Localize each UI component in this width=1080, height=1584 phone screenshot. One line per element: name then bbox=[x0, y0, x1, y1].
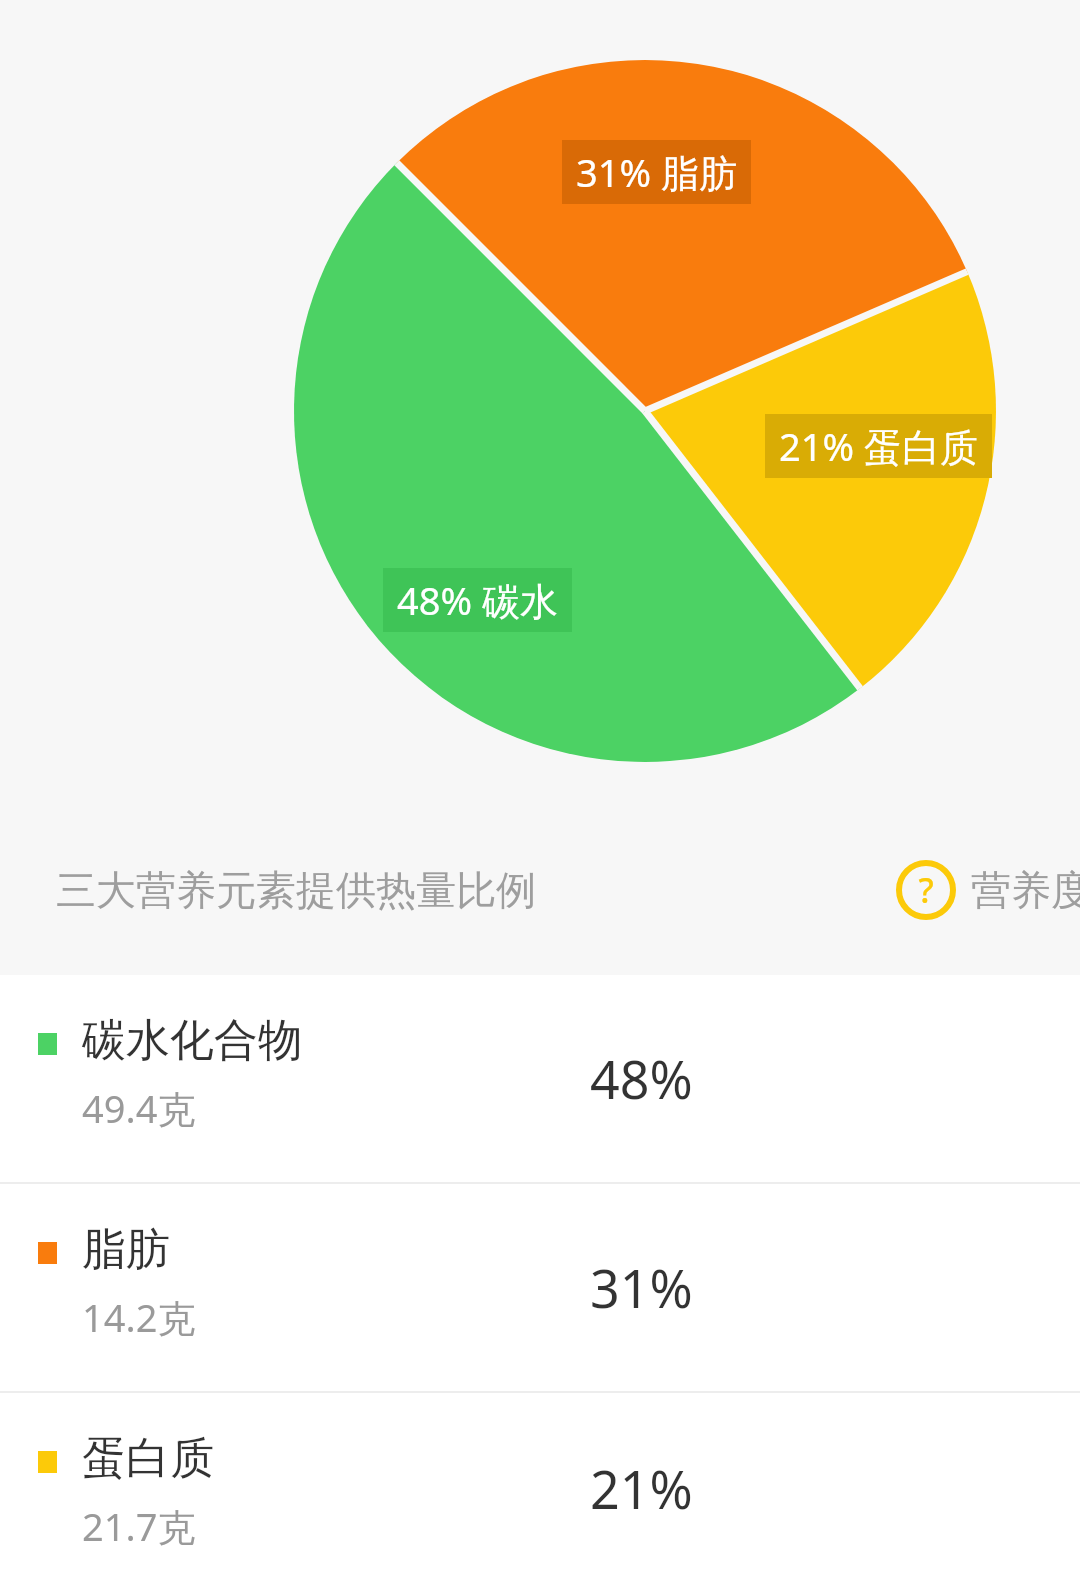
button[interactable]: 营养degree help bbox=[895, 859, 1080, 921]
staticText: 碳水化合物 bbox=[82, 1013, 302, 1068]
staticText: 21.7克 bbox=[82, 1500, 196, 1552]
staticText: 蛋白质 bbox=[82, 1431, 214, 1486]
staticText: 21% bbox=[590, 1453, 693, 1524]
staticText: 48% bbox=[590, 1043, 693, 1114]
staticText: 49.4克 bbox=[82, 1082, 196, 1134]
button[interactable]: 脂肪 bbox=[0, 1184, 1080, 1391]
staticText: 31% bbox=[590, 1252, 693, 1323]
button[interactable]: 蛋白质 bbox=[0, 1393, 1080, 1584]
staticText: 21% 蛋白质 bbox=[779, 420, 978, 472]
button[interactable]: 碳水化合物 bbox=[0, 975, 1080, 1182]
staticText: ? bbox=[918, 867, 934, 913]
staticText: 14.2克 bbox=[82, 1291, 196, 1343]
staticText: 三大营养元素提供热量比例 bbox=[56, 865, 536, 915]
staticText: 48% 碳水 bbox=[397, 574, 558, 626]
staticText: 脂肪 bbox=[82, 1222, 170, 1277]
staticText: 营养度 bbox=[971, 865, 1080, 915]
staticText: 31% 脂肪 bbox=[576, 146, 737, 198]
